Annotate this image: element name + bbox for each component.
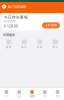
staticText: 报修 [37,46,43,49]
staticText: 账单 [21,46,27,49]
staticText: 首页 [4,95,8,98]
button[interactable]: 缴费 [26,90,38,98]
button[interactable]: 报修 [32,38,47,50]
button[interactable]: 首页 [0,90,13,98]
button[interactable]: 账单 [16,38,32,50]
button[interactable]: 消息 [38,90,51,98]
staticText: 账户异常提醒 [8,4,26,9]
button[interactable]: 服务 [13,90,26,98]
staticText: ¥ 128.00 [4,24,18,28]
staticText: 服务 [17,95,21,98]
button[interactable]: 缴费 [1,38,16,50]
staticText: 今日待办事项 [4,15,28,20]
button[interactable]: 用水 [47,38,63,50]
staticText: 待缴费用 [4,20,16,23]
staticText: 缴费 [6,46,12,49]
staticText: 我的 [56,95,60,98]
staticText: 缴费 [30,95,34,98]
button[interactable]: 立即缴费 [42,22,60,28]
staticText: 常用服务 [3,33,15,37]
button[interactable]: 我的 [51,90,64,98]
staticText: 立即缴费 [45,23,57,27]
staticText: 消息 [43,95,47,98]
staticText: 用水 [52,46,58,49]
